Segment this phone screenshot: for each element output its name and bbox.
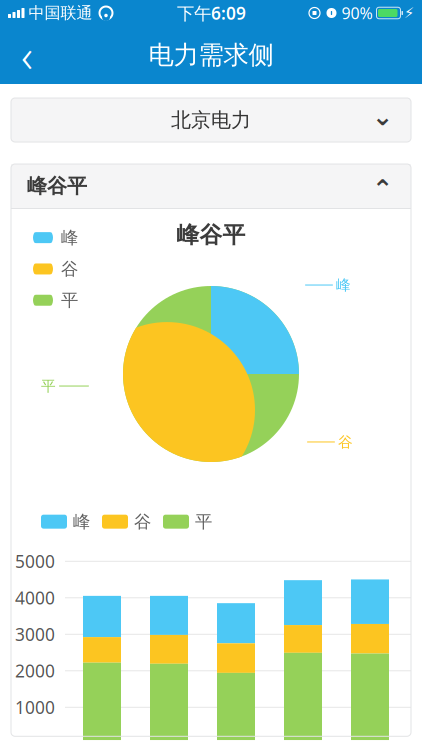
staticText: 谷 xyxy=(61,258,78,280)
staticText: 1000 xyxy=(15,696,55,719)
staticText: 谷 xyxy=(338,433,353,451)
staticText: ‹ xyxy=(21,25,33,85)
staticText: 峰 xyxy=(61,227,78,248)
staticText: 90% xyxy=(341,2,372,24)
button[interactable]: 峰谷平 xyxy=(11,164,411,208)
staticText: 4000 xyxy=(15,586,55,609)
staticText: 5000 xyxy=(15,550,55,573)
button[interactable]: Back xyxy=(0,26,54,84)
staticText: 平 xyxy=(41,377,56,395)
staticText: ⚡︎ xyxy=(404,5,414,21)
staticText: 3000 xyxy=(15,623,55,646)
staticText: 电力需求侧 xyxy=(148,39,273,70)
staticText: 中国联通 xyxy=(28,3,92,23)
staticText: 峰谷平 xyxy=(27,174,87,198)
staticText: 2000 xyxy=(15,659,55,682)
button[interactable]: 北京电力 xyxy=(11,98,411,142)
staticText: 平 xyxy=(195,511,212,532)
staticText: 峰 xyxy=(336,276,351,294)
staticText: ⌄ xyxy=(372,102,393,131)
staticText: 峰谷平 xyxy=(176,221,245,249)
staticText: 北京电力 xyxy=(171,108,251,132)
staticText: 下午6:09 xyxy=(177,1,246,24)
staticText: 平 xyxy=(61,290,78,311)
staticText: 峰 xyxy=(73,511,90,532)
staticText: 谷 xyxy=(134,511,151,532)
staticText: ⌃ xyxy=(372,175,393,203)
